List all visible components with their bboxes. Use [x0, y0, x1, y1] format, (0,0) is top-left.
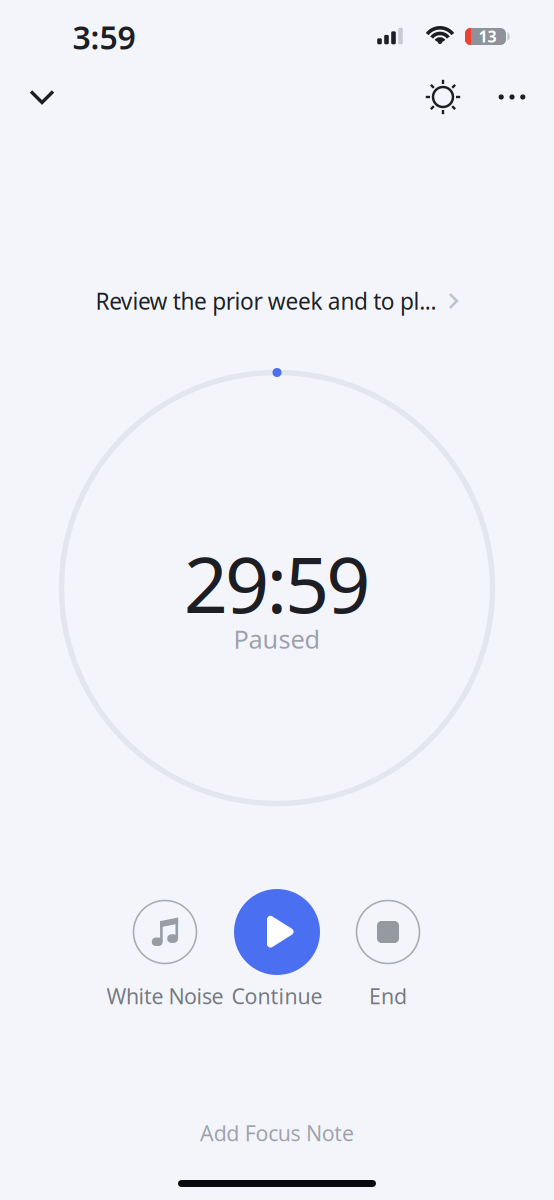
button[interactable]: Review the prior week and to pl...: [96, 286, 458, 316]
staticText: Review the prior week and to pl...: [96, 286, 436, 316]
button[interactable]: End: [356, 900, 419, 963]
staticText: Continue: [231, 982, 322, 1010]
staticText: 13: [478, 26, 496, 47]
button[interactable]: Focus mode: [421, 75, 465, 119]
button[interactable]: Minimize: [20, 75, 64, 119]
staticText: Add Focus Note: [200, 1119, 354, 1147]
staticText: White Noise: [106, 982, 223, 1010]
staticText: 29:59: [184, 532, 370, 634]
button[interactable]: White Noise: [133, 900, 196, 963]
staticText: Paused: [233, 622, 320, 656]
button[interactable]: Continue: [234, 889, 320, 975]
staticText: End: [369, 982, 407, 1010]
staticText: 3:59: [72, 16, 135, 58]
button[interactable]: More options: [490, 75, 534, 119]
button[interactable]: Add Focus Note: [200, 1119, 354, 1147]
